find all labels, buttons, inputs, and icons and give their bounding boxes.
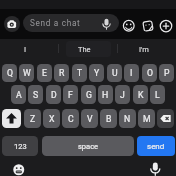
staticText: I'm [139, 45, 149, 54]
staticText: N [124, 114, 131, 124]
staticText: The [78, 45, 91, 54]
button[interactable]: The [64, 41, 104, 57]
staticText: B [106, 114, 112, 124]
staticText: I [130, 68, 133, 78]
staticText: P [164, 68, 170, 78]
button[interactable]: D [46, 85, 61, 104]
staticText: H [102, 90, 109, 100]
staticText: O [147, 68, 153, 78]
staticText: G [86, 90, 92, 100]
button[interactable] [2, 109, 21, 128]
staticText: T [77, 68, 83, 78]
button[interactable]: W [19, 64, 34, 82]
button[interactable]: L [150, 85, 165, 104]
button[interactable]: C [62, 109, 79, 128]
staticText: U [112, 68, 118, 78]
staticText: Y [94, 68, 100, 78]
button[interactable]: O [142, 64, 157, 82]
staticText: send [147, 142, 165, 151]
button[interactable]: G [81, 85, 96, 104]
button[interactable]: K [133, 85, 148, 104]
button[interactable]: F [63, 85, 78, 104]
staticText: V [87, 114, 93, 124]
button[interactable]: U [107, 64, 122, 82]
staticText: M [143, 114, 151, 124]
button[interactable]: I [5, 41, 45, 57]
staticText: L [155, 90, 160, 100]
button[interactable]: M [138, 109, 155, 128]
button[interactable]: Send a chat [23, 14, 119, 32]
button[interactable]: A [11, 85, 26, 104]
staticText: 123 [14, 142, 27, 151]
staticText: R [59, 68, 65, 78]
button[interactable]: H [98, 85, 113, 104]
staticText: S [33, 90, 39, 100]
button[interactable]: X [43, 109, 60, 128]
button[interactable]: Q [2, 64, 17, 82]
button[interactable] [123, 20, 135, 32]
staticText: E [42, 68, 47, 78]
button[interactable] [13, 164, 25, 176]
button[interactable] [160, 20, 172, 32]
staticText: J [120, 90, 125, 100]
button[interactable]: J [115, 85, 130, 104]
button[interactable]: P [159, 64, 174, 82]
button[interactable]: T [72, 64, 87, 82]
staticText: A [16, 90, 22, 100]
staticText: K [138, 90, 144, 100]
button[interactable]: I'm [124, 41, 164, 57]
staticText: Z [30, 114, 36, 124]
button[interactable]: R [54, 64, 69, 82]
staticText: D [51, 90, 57, 100]
button[interactable] [4, 16, 20, 32]
staticText: X [49, 114, 55, 124]
staticText: W [23, 68, 31, 78]
staticText: space [78, 142, 99, 151]
staticText: Send a chat [30, 18, 81, 28]
button[interactable]: S [28, 85, 43, 104]
button[interactable]: V [81, 109, 98, 128]
button[interactable] [148, 161, 162, 175]
button[interactable]: B [100, 109, 117, 128]
button[interactable] [157, 109, 174, 128]
staticText: Q [7, 68, 13, 78]
button[interactable]: E [37, 64, 52, 82]
button[interactable]: send [137, 136, 175, 156]
button[interactable]: Y [89, 64, 104, 82]
button[interactable] [142, 20, 154, 32]
button[interactable]: N [119, 109, 136, 128]
staticText: F [68, 90, 73, 100]
staticText: C [68, 114, 74, 124]
button[interactable]: Z [24, 109, 41, 128]
staticText: I [24, 45, 27, 54]
button[interactable]: space [42, 136, 134, 156]
button[interactable]: I [124, 64, 139, 82]
button[interactable]: 123 [2, 136, 38, 156]
